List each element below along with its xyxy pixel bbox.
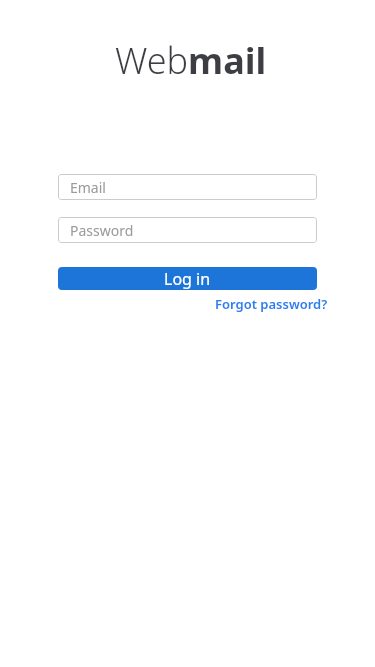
button[interactable]: Log in bbox=[58, 267, 317, 290]
button[interactable]: Forgot password? bbox=[215, 295, 328, 313]
staticText: Email bbox=[70, 178, 106, 197]
button[interactable]: Password bbox=[58, 217, 317, 243]
staticText: Forgot password? bbox=[215, 295, 328, 313]
staticText: Webmail bbox=[115, 36, 267, 85]
staticText: Password bbox=[70, 221, 134, 240]
staticText: Log in bbox=[164, 268, 211, 290]
button[interactable]: Email bbox=[58, 174, 317, 200]
